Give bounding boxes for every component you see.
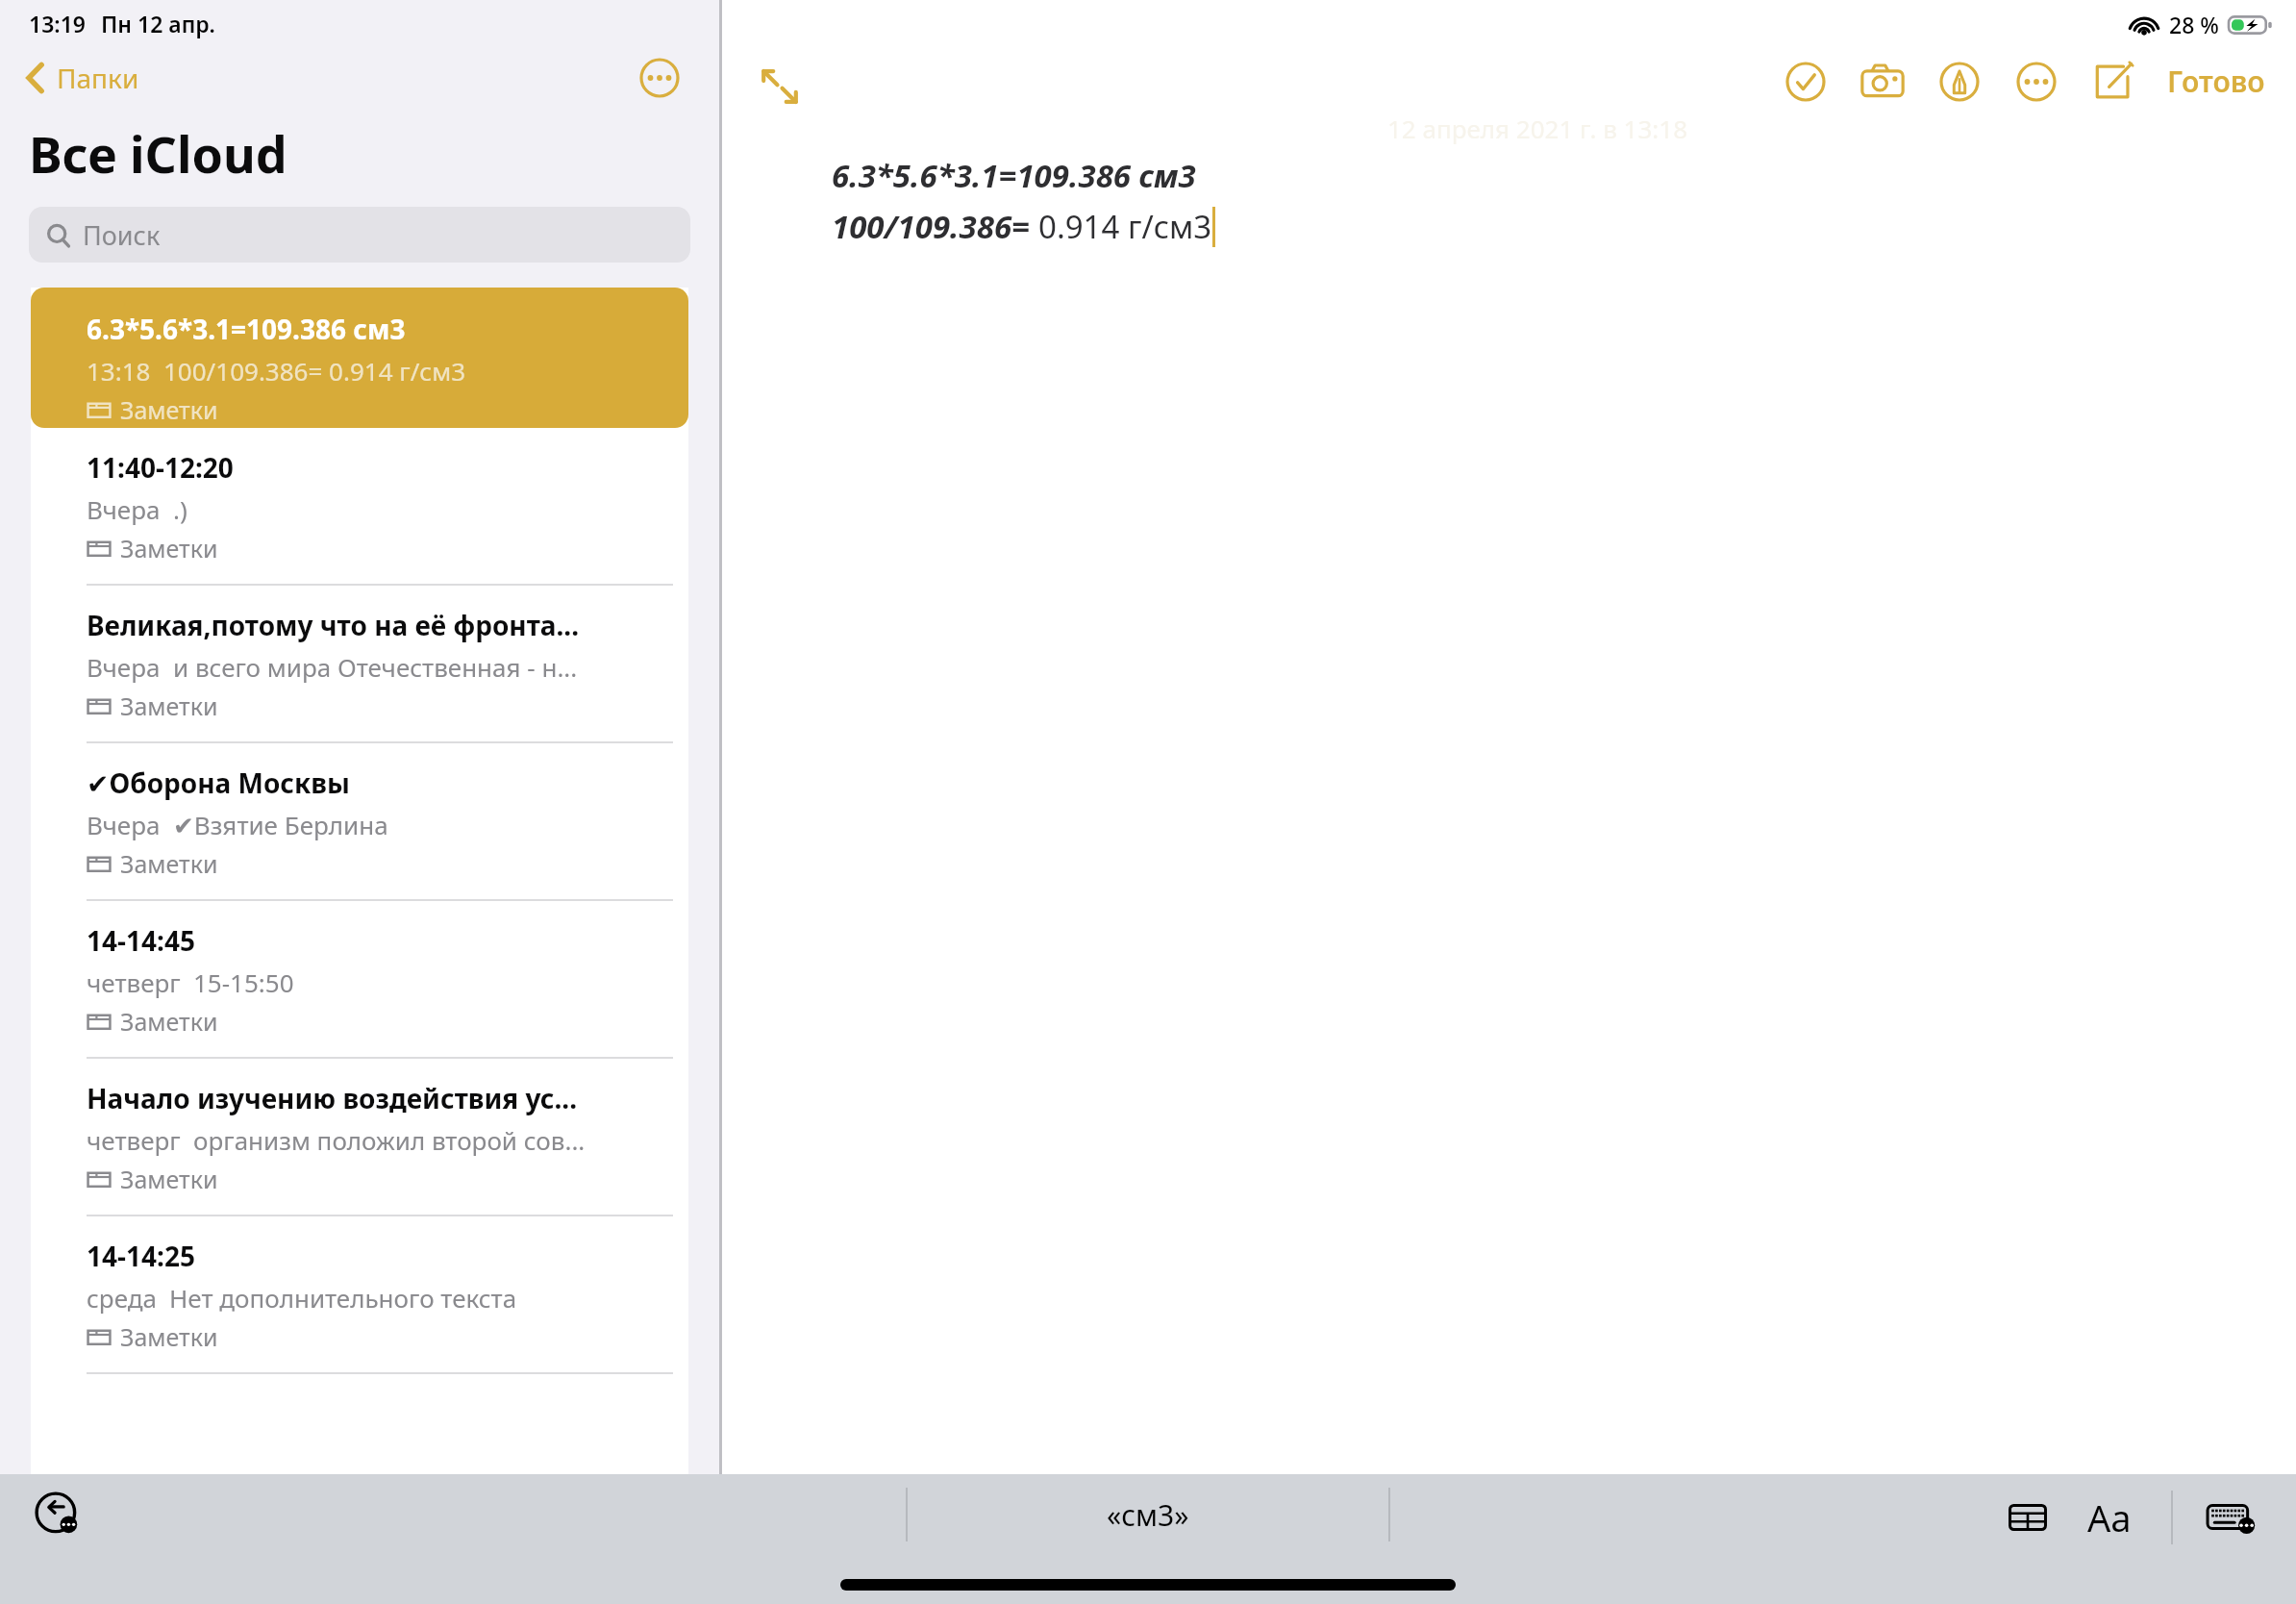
- staticText: ✔Оборона Москвы: [87, 764, 350, 801]
- button[interactable]: Ещё: [638, 57, 681, 99]
- staticText: Вчера: [87, 492, 161, 526]
- staticText: четверг: [87, 1123, 181, 1157]
- staticText: среда: [87, 1281, 157, 1315]
- staticText: 28 %: [2169, 10, 2219, 39]
- button[interactable]: Готово, отметить: [1781, 57, 1831, 107]
- button[interactable]: Скрыть клавиатуру: [2202, 1488, 2261, 1547]
- staticText: организм положил второй сов...: [193, 1123, 586, 1157]
- staticText: 14-14:25: [87, 1238, 195, 1274]
- button[interactable]: Новая заметка: [2088, 57, 2138, 107]
- button[interactable]: Начало изучению воздействия ус...: [31, 1059, 688, 1216]
- staticText: 12 апреля 2021 г. в 13:18: [1387, 112, 1688, 145]
- staticText: Все iCloud: [29, 119, 287, 188]
- staticText: четверг: [87, 965, 181, 999]
- button[interactable]: Поиск: [29, 207, 690, 263]
- staticText: Нет дополнительного текста: [169, 1281, 517, 1315]
- button[interactable]: 11:40-12:20: [31, 428, 688, 586]
- button[interactable]: 14-14:25: [31, 1216, 688, 1374]
- button[interactable]: Папки: [0, 52, 151, 104]
- button[interactable]: Развернуть: [753, 60, 807, 113]
- staticText: Заметки: [120, 1320, 218, 1353]
- button[interactable]: Таблица: [2000, 1490, 2056, 1545]
- button[interactable]: Камера: [1858, 57, 1908, 107]
- staticText: 13:18 100/109.386= 0.914 г/см3: [87, 354, 466, 388]
- staticText: 6.3*5.6*3.1=109.386 см3: [87, 311, 406, 347]
- staticText: Пн 12 апр.: [101, 9, 215, 38]
- staticText: Заметки: [120, 532, 218, 564]
- staticText: Поиск: [83, 217, 161, 253]
- button[interactable]: Разметка: [1934, 57, 1984, 107]
- staticText: 0.914 г/см3: [1038, 205, 1212, 248]
- staticText: Начало изучению воздействия ус...: [87, 1080, 577, 1116]
- button[interactable]: ✔Оборона Москвы: [31, 743, 688, 901]
- staticText: 15-15:50: [193, 965, 294, 999]
- staticText: ✔Взятие Берлина: [173, 808, 388, 841]
- button[interactable]: Отменить: [29, 1486, 88, 1545]
- staticText: Заметки: [120, 689, 218, 722]
- staticText: Великая,потому что на её фронта...: [87, 607, 580, 643]
- staticText: 14-14:45: [87, 922, 195, 959]
- staticText: 6.3*5.6*3.1=109.386 см3: [832, 154, 1196, 197]
- button[interactable]: Ещё: [2011, 57, 2061, 107]
- staticText: Заметки: [120, 847, 218, 880]
- staticText: «см3»: [1107, 1495, 1189, 1535]
- staticText: Папки: [57, 60, 139, 96]
- staticText: 13:19: [29, 9, 86, 38]
- staticText: Aa: [2087, 1492, 2132, 1542]
- staticText: .): [173, 492, 187, 526]
- staticText: Готово: [2167, 62, 2265, 101]
- button[interactable]: 6.3*5.6*3.1=109.386 см3: [31, 288, 688, 428]
- staticText: Вчера: [87, 650, 161, 684]
- button[interactable]: Великая,потому что на её фронта...: [31, 586, 688, 743]
- staticText: Заметки: [120, 1005, 218, 1038]
- button[interactable]: Aa: [2081, 1489, 2138, 1546]
- staticText: 11:40-12:20: [87, 449, 234, 486]
- staticText: Заметки: [120, 1163, 218, 1195]
- staticText: Заметки: [120, 393, 218, 426]
- button[interactable]: Готово: [2159, 54, 2273, 109]
- staticText: и всего мира Отечественная - н...: [173, 650, 578, 684]
- button[interactable]: 14-14:45: [31, 901, 688, 1059]
- staticText: 100/109.386=: [832, 205, 1030, 248]
- button[interactable]: «см3»: [908, 1488, 1388, 1541]
- staticText: Вчера: [87, 808, 161, 841]
